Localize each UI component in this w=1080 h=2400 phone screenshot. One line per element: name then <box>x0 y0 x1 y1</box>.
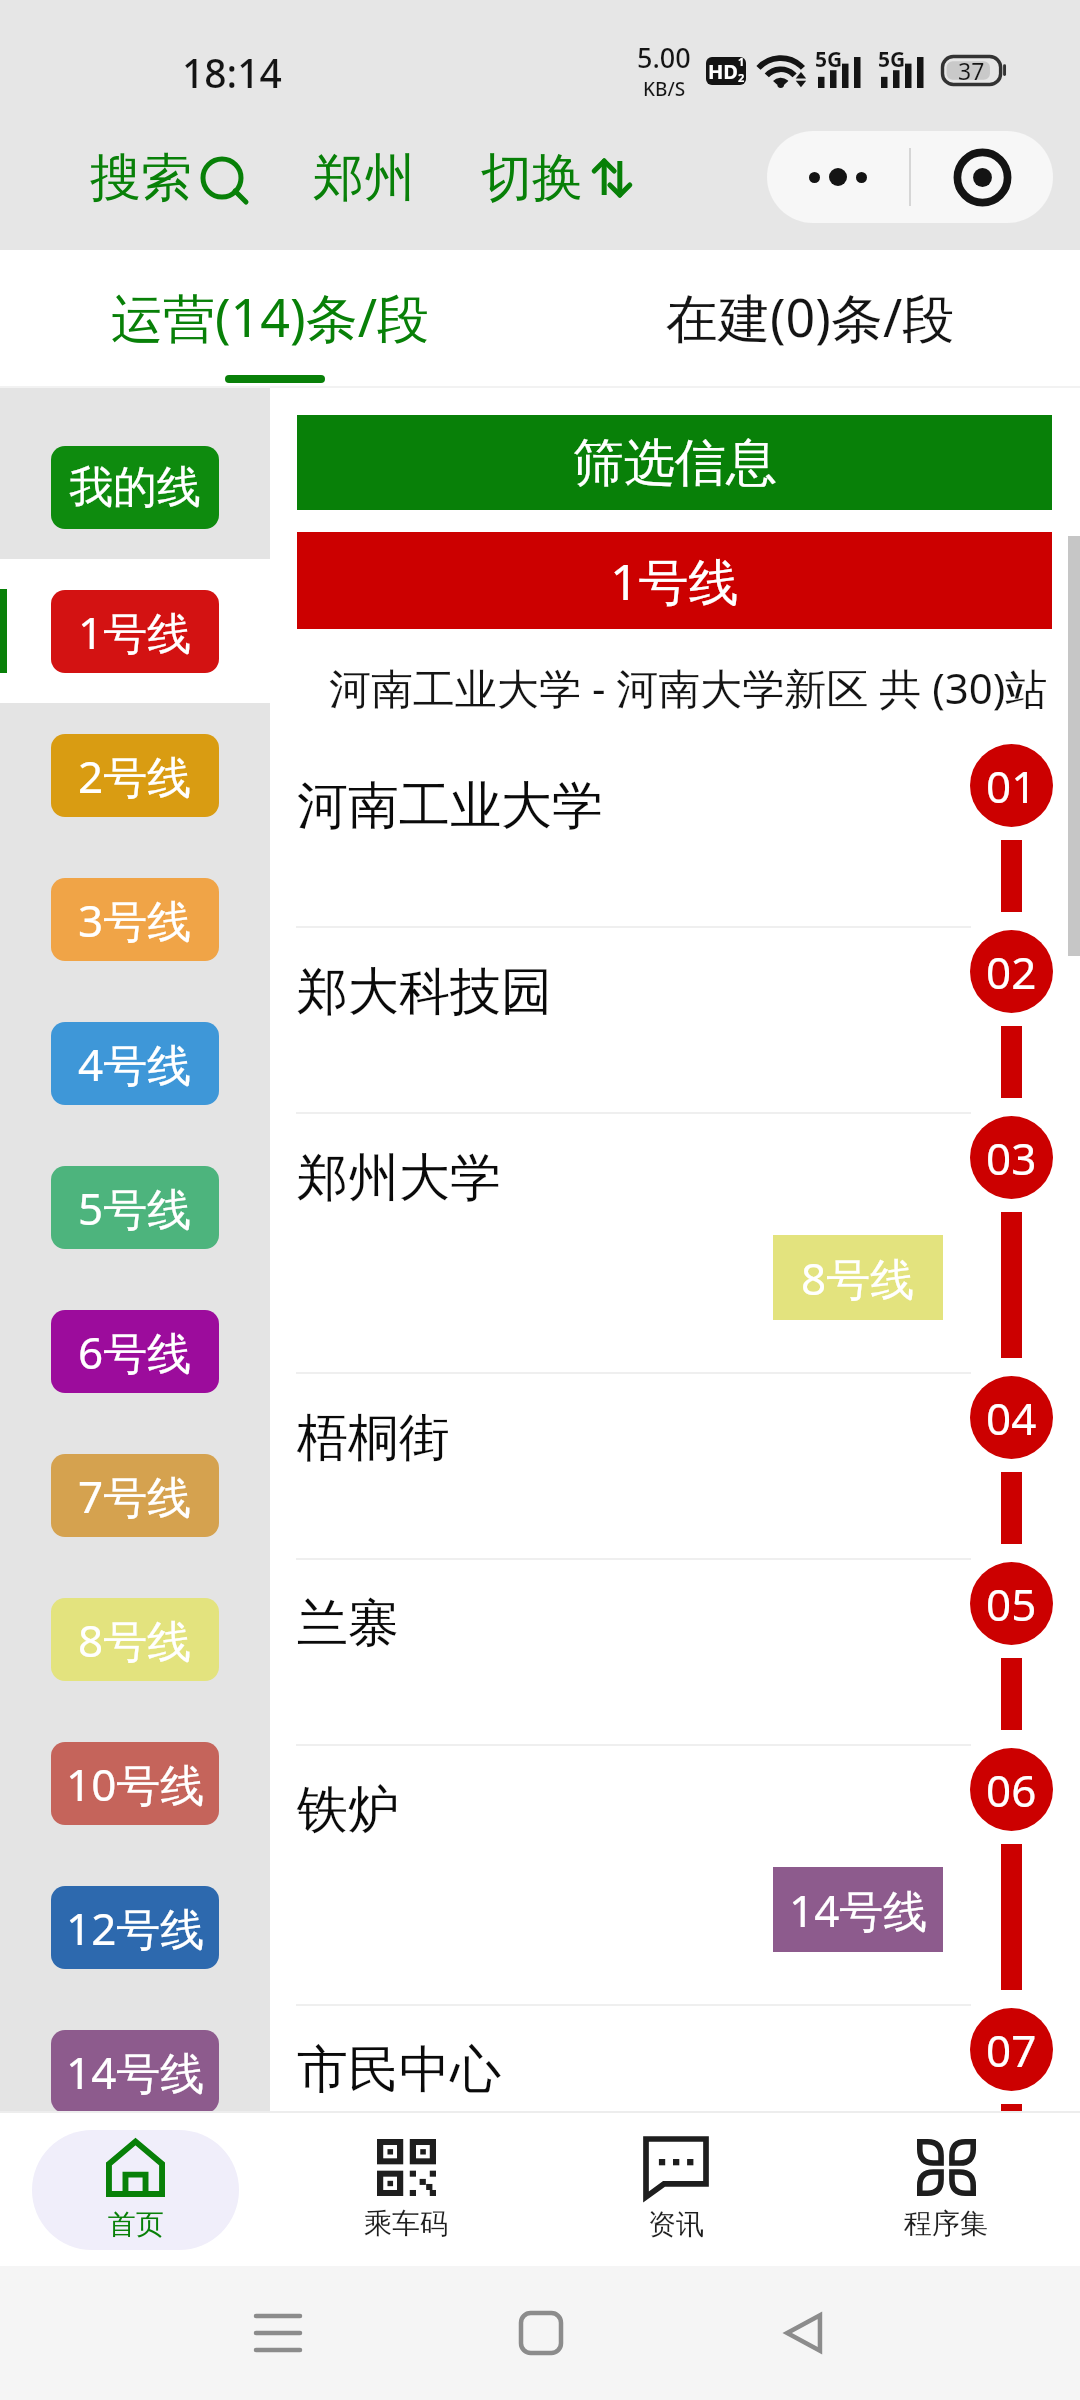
staticText: 18:14 <box>182 46 282 99</box>
staticText: 04 <box>986 1388 1037 1448</box>
staticText: 8号线 <box>78 1610 192 1670</box>
staticText: 02 <box>986 942 1037 1002</box>
staticText: 郑州大学 <box>297 1146 501 1210</box>
staticText: 乘车码 <box>364 2206 448 2241</box>
button[interactable]: 3号线 <box>0 847 270 991</box>
button[interactable]: 我的线 <box>0 415 270 559</box>
staticText: 6号线 <box>78 1322 192 1382</box>
staticText: 1 <box>738 57 745 69</box>
staticText: 10号线 <box>66 1754 205 1814</box>
button[interactable]: 市民中心 <box>270 2004 1080 2111</box>
button[interactable]: 资讯 <box>540 2113 810 2266</box>
button[interactable]: 郑大科技园 <box>270 926 1080 1112</box>
staticText: 铁炉 <box>297 1778 399 1842</box>
button[interactable]: Home <box>409 2266 672 2400</box>
button[interactable]: 7号线 <box>0 1423 270 1567</box>
staticText: 郑大科技园 <box>297 960 552 1024</box>
staticText: 06 <box>986 1760 1037 1820</box>
button[interactable]: 河南工业大学 <box>270 740 1080 926</box>
button[interactable]: 14号线 <box>0 1999 270 2111</box>
staticText: 运营(14)条/段 <box>111 281 430 352</box>
button[interactable]: More options <box>767 131 909 223</box>
button[interactable]: 8号线 <box>0 1567 270 1711</box>
staticText: 03 <box>986 1128 1037 1188</box>
button[interactable]: 郑州大学 <box>270 1112 1080 1372</box>
button[interactable]: 在建(0)条/段 <box>540 250 1080 386</box>
staticText: 在建(0)条/段 <box>666 281 955 352</box>
button[interactable]: Back <box>672 2266 935 2400</box>
staticText: 我的线 <box>69 460 201 515</box>
staticText: KB/S <box>643 76 686 102</box>
button[interactable]: 兰寨 <box>270 1558 1080 1744</box>
staticText: 搜索 <box>90 146 192 210</box>
staticText: 筛选信息 <box>573 431 777 495</box>
button[interactable]: 12号线 <box>0 1855 270 1999</box>
staticText: 5.00 <box>637 39 691 76</box>
staticText: 梧桐街 <box>297 1406 450 1470</box>
staticText: 市民中心 <box>297 2038 501 2102</box>
button[interactable]: 8号线 <box>773 1235 943 1320</box>
button[interactable]: 搜索 <box>87 136 250 220</box>
staticText: 12号线 <box>66 1898 205 1958</box>
button[interactable]: Recent apps <box>146 2266 409 2400</box>
staticText: 14号线 <box>789 1880 928 1940</box>
staticText: 5号线 <box>78 1178 192 1238</box>
button[interactable]: 首页 <box>0 2113 270 2266</box>
button[interactable]: 切换 <box>478 136 632 220</box>
staticText: 3号线 <box>78 890 192 950</box>
button[interactable]: 10号线 <box>0 1711 270 1855</box>
staticText: 14号线 <box>66 2042 205 2102</box>
staticText: 2 <box>738 70 745 83</box>
button[interactable]: 14号线 <box>773 1867 943 1952</box>
button[interactable]: 铁炉 <box>270 1744 1080 2004</box>
staticText: 01 <box>986 756 1037 816</box>
button[interactable]: 5号线 <box>0 1135 270 1279</box>
button[interactable]: 郑州 <box>310 136 418 220</box>
button[interactable]: 筛选信息 <box>297 415 1052 510</box>
staticText: 37 <box>958 55 985 86</box>
staticText: 首页 <box>108 2207 164 2242</box>
button[interactable]: 4号线 <box>0 991 270 1135</box>
button[interactable]: 6号线 <box>0 1279 270 1423</box>
staticText: HD <box>708 58 738 85</box>
button[interactable]: 2号线 <box>0 703 270 847</box>
staticText: 8号线 <box>801 1248 915 1308</box>
staticText: 兰寨 <box>297 1592 399 1656</box>
staticText: 5G <box>815 45 843 74</box>
staticText: 05 <box>986 1574 1037 1634</box>
staticText: 切换 <box>481 146 583 210</box>
staticText: 河南工业大学 - 河南大学新区 共 (30)站 <box>329 659 1048 716</box>
staticText: 7号线 <box>78 1466 192 1526</box>
button[interactable]: 1号线 <box>0 559 270 703</box>
button[interactable]: 乘车码 <box>270 2113 540 2266</box>
button[interactable]: 梧桐街 <box>270 1372 1080 1558</box>
staticText: 资讯 <box>648 2207 704 2242</box>
button[interactable]: Close mini program <box>911 131 1053 223</box>
staticText: 程序集 <box>904 2206 988 2241</box>
staticText: 5G <box>878 45 906 74</box>
staticText: 河南工业大学 <box>297 774 603 838</box>
staticText: 2号线 <box>78 746 192 806</box>
staticText: 07 <box>986 2020 1037 2080</box>
button[interactable]: 程序集 <box>810 2113 1080 2266</box>
staticText: 1号线 <box>78 602 192 662</box>
staticText: 4号线 <box>78 1034 192 1094</box>
button[interactable]: 运营(14)条/段 <box>0 250 540 386</box>
staticText: 1号线 <box>610 547 739 615</box>
